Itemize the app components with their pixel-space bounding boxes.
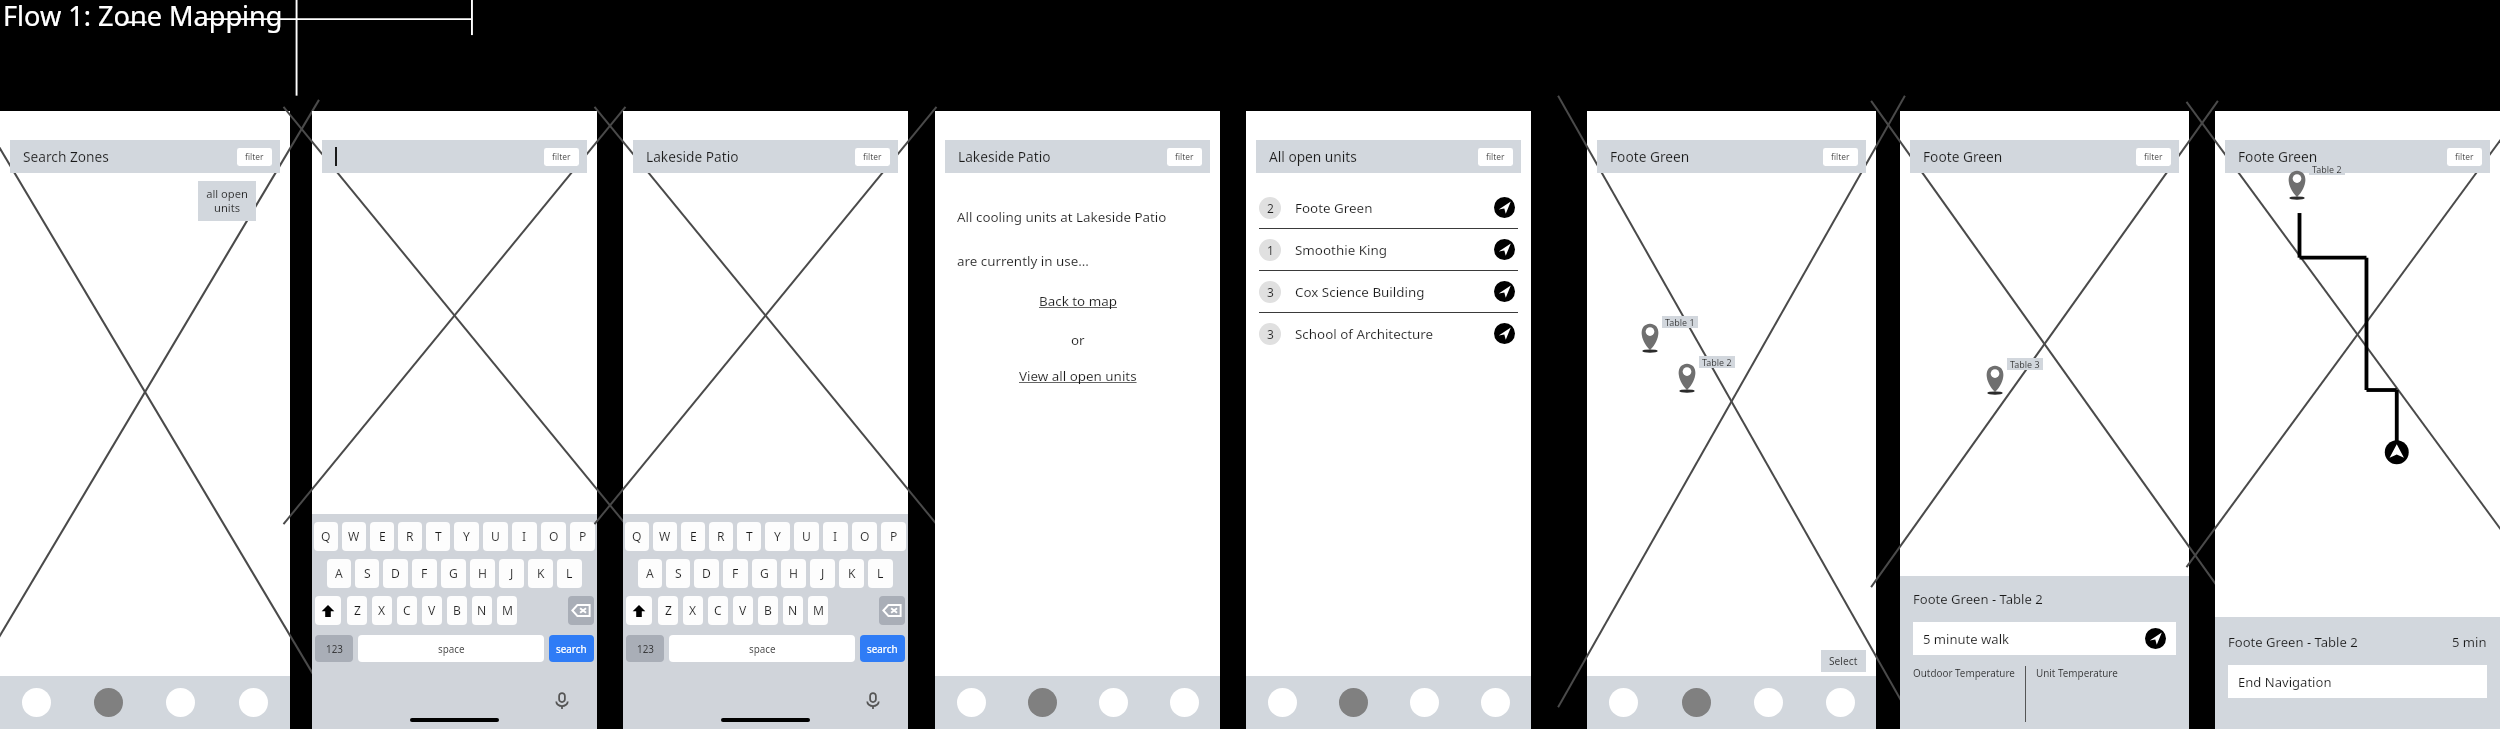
button[interactable]: V	[422, 596, 442, 625]
button[interactable]: B	[758, 596, 778, 625]
button[interactable]: filter	[2455, 151, 2474, 163]
button[interactable]: E	[681, 522, 705, 551]
button[interactable]: L	[868, 559, 893, 588]
button[interactable]: filter	[863, 151, 882, 163]
button[interactable]: Tab 3	[1078, 676, 1149, 729]
button[interactable]: K	[839, 559, 864, 588]
button[interactable]: 1	[1246, 229, 1531, 270]
button[interactable]: Backspace	[879, 596, 905, 625]
button[interactable]: Tab 4	[217, 676, 290, 729]
button[interactable]: O	[541, 522, 566, 551]
button[interactable]: Tab 2	[72, 676, 144, 729]
button[interactable]: filter	[2144, 151, 2163, 163]
button[interactable]: Y	[454, 522, 479, 551]
button[interactable]: D	[694, 559, 719, 588]
button[interactable]: Shift	[315, 596, 341, 625]
button[interactable]: U	[483, 522, 508, 551]
button[interactable]: H	[781, 559, 806, 588]
button[interactable]: filter	[552, 151, 571, 163]
button[interactable]: 3	[1246, 313, 1531, 354]
button[interactable]: all open units	[206, 186, 248, 216]
button[interactable]: End Navigation	[2228, 665, 2487, 698]
button[interactable]: filter	[1831, 151, 1850, 163]
button[interactable]: G	[752, 559, 777, 588]
button[interactable]: Search Zones	[10, 140, 280, 173]
button[interactable]: I	[512, 522, 537, 551]
button[interactable]: K	[528, 559, 553, 588]
button[interactable]: Tab 3	[144, 676, 217, 729]
button[interactable]: Tab 1	[935, 676, 1007, 729]
button[interactable]: C	[397, 596, 417, 625]
button[interactable]: M	[808, 596, 828, 625]
button[interactable]: space	[358, 635, 544, 662]
button[interactable]: A	[638, 559, 662, 588]
button[interactable]: Y	[765, 522, 790, 551]
button[interactable]: T	[426, 522, 450, 551]
button[interactable]: X	[372, 596, 392, 625]
button[interactable]: Select	[1829, 654, 1858, 668]
button[interactable]: U	[794, 522, 819, 551]
button[interactable]: Tab 4	[1460, 676, 1531, 729]
button[interactable]: N	[783, 596, 803, 625]
button[interactable]: J	[810, 559, 835, 588]
button[interactable]: Tab 4	[1149, 676, 1220, 729]
button[interactable]: B	[447, 596, 467, 625]
button[interactable]: Z	[658, 596, 678, 625]
button[interactable]: Foote Green	[1597, 140, 1866, 173]
button[interactable]: filter	[1486, 151, 1505, 163]
button[interactable]: 123	[626, 635, 664, 662]
button[interactable]: Foote Green	[1910, 140, 2179, 173]
button[interactable]: View all open units	[935, 367, 1220, 385]
button[interactable]: P	[570, 522, 595, 551]
button[interactable]: D	[383, 559, 408, 588]
button[interactable]: A	[327, 559, 351, 588]
button[interactable]: 3	[1246, 271, 1531, 312]
button[interactable]: filter	[1175, 151, 1194, 163]
button[interactable]: filter	[322, 140, 587, 173]
button[interactable]: C	[708, 596, 728, 625]
button[interactable]: F	[723, 559, 748, 588]
button[interactable]: Tab 1	[1246, 676, 1318, 729]
button[interactable]: Tab 2	[1660, 676, 1732, 729]
button[interactable]: M	[497, 596, 517, 625]
button[interactable]: Tab 3	[1732, 676, 1804, 729]
button[interactable]: S	[355, 559, 379, 588]
button[interactable]: Lakeside Patio	[945, 140, 1210, 173]
button[interactable]: search	[860, 635, 905, 662]
button[interactable]: F	[412, 559, 437, 588]
button[interactable]: Q	[314, 522, 338, 551]
button[interactable]: G	[441, 559, 466, 588]
button[interactable]: Shift	[626, 596, 652, 625]
button[interactable]: Tab 4	[1804, 676, 1876, 729]
button[interactable]: Z	[347, 596, 367, 625]
button[interactable]: V	[733, 596, 753, 625]
button[interactable]: E	[370, 522, 394, 551]
button[interactable]: 2	[1246, 187, 1531, 228]
button[interactable]: All open units	[1256, 140, 1521, 173]
button[interactable]: Tab 2	[1318, 676, 1389, 729]
button[interactable]: Q	[625, 522, 649, 551]
button[interactable]: 5 minute walk	[1913, 622, 2176, 655]
button[interactable]: filter	[245, 151, 264, 163]
button[interactable]: S	[666, 559, 690, 588]
button[interactable]: R	[709, 522, 733, 551]
button[interactable]: R	[398, 522, 422, 551]
button[interactable]: N	[472, 596, 492, 625]
button[interactable]: Tab 1	[0, 676, 72, 729]
button[interactable]: H	[470, 559, 495, 588]
button[interactable]: Tab 3	[1389, 676, 1460, 729]
button[interactable]: Foote Green	[2225, 140, 2490, 173]
button[interactable]: Back to map	[935, 292, 1220, 310]
button[interactable]: space	[669, 635, 855, 662]
button[interactable]: I	[823, 522, 848, 551]
button[interactable]: X	[683, 596, 703, 625]
button[interactable]: Tab 1	[1587, 676, 1660, 729]
button[interactable]: Lakeside Patio	[633, 140, 898, 173]
button[interactable]: O	[852, 522, 877, 551]
button[interactable]: L	[557, 559, 582, 588]
button[interactable]: T	[737, 522, 761, 551]
button[interactable]: Backspace	[568, 596, 594, 625]
button[interactable]: 123	[315, 635, 353, 662]
button[interactable]: W	[342, 522, 366, 551]
button[interactable]: Tab 2	[1007, 676, 1078, 729]
